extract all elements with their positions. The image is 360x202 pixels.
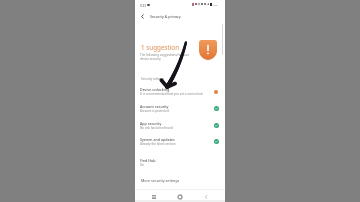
staticText: Account is protected xyxy=(140,109,169,113)
staticText: No risk has been found xyxy=(140,126,173,130)
staticText: 1 suggestion xyxy=(141,43,180,52)
staticText: Device unlocking xyxy=(140,87,170,92)
staticText: 9:23 xyxy=(140,4,146,8)
button[interactable]: Back xyxy=(138,12,147,21)
button[interactable]: System and updates xyxy=(135,137,225,152)
staticText: Account security xyxy=(140,104,169,109)
staticText: Security & privacy xyxy=(150,14,181,19)
staticText: Find Hub xyxy=(140,158,156,163)
staticText: The following suggestions for your devic… xyxy=(140,53,189,61)
button[interactable]: Back xyxy=(201,191,211,202)
staticText: System and updates xyxy=(140,137,175,142)
staticText: Security settings xyxy=(141,77,165,81)
button[interactable]: Home xyxy=(175,191,185,202)
button[interactable]: App security xyxy=(135,121,225,136)
staticText: On xyxy=(140,163,145,167)
staticText: More security settings xyxy=(141,178,180,183)
staticText: 53% xyxy=(213,3,218,6)
staticText: App security xyxy=(140,121,162,126)
button[interactable]: Device unlocking xyxy=(135,87,225,102)
staticText: It is recommended that you set a screen … xyxy=(140,92,203,96)
button[interactable]: Account security xyxy=(135,104,225,119)
button[interactable]: Recent apps xyxy=(149,191,159,202)
staticText: Already the latest version xyxy=(140,142,176,146)
button[interactable]: Find Hub xyxy=(135,158,225,173)
